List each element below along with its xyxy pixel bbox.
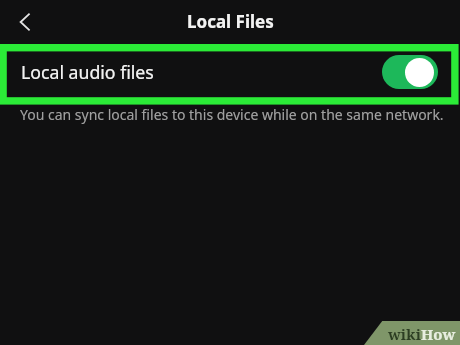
- button[interactable]: Back: [7, 4, 43, 40]
- button[interactable]: Local audio files, on: [382, 55, 438, 89]
- staticText: wiki: [388, 324, 421, 344]
- staticText: How: [421, 324, 456, 344]
- staticText: You can sync local files to this device …: [20, 105, 444, 124]
- staticText: Local Files: [187, 10, 274, 33]
- button[interactable]: Local audio files: [0, 42, 460, 102]
- staticText: Local audio files: [21, 60, 154, 84]
